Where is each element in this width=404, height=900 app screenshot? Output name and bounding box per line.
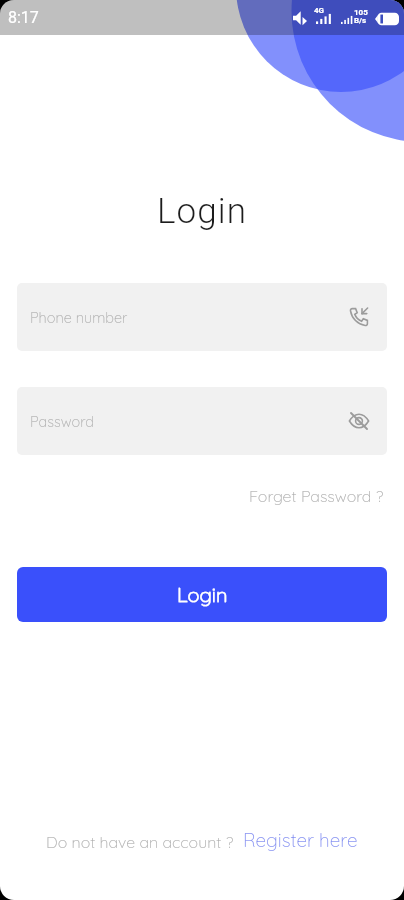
staticText: Login — [0, 191, 404, 232]
button[interactable]: Password — [17, 387, 387, 455]
other: Show password — [347, 409, 371, 433]
other: Phone number — [347, 305, 371, 329]
staticText: Password — [30, 412, 347, 430]
staticText: Do not have an account ? — [46, 832, 234, 852]
staticText: Phone number — [30, 308, 347, 326]
button[interactable]: Register here — [243, 828, 358, 852]
button[interactable]: Login — [17, 567, 387, 622]
button[interactable]: Phone number — [17, 283, 387, 351]
staticText: 8:17 — [8, 8, 39, 27]
staticText: 4G — [314, 6, 325, 15]
staticText: B/s — [354, 16, 367, 25]
button[interactable]: Forget Password ? — [241, 482, 392, 510]
staticText: Login — [177, 582, 228, 607]
staticText: 105 — [354, 8, 368, 17]
